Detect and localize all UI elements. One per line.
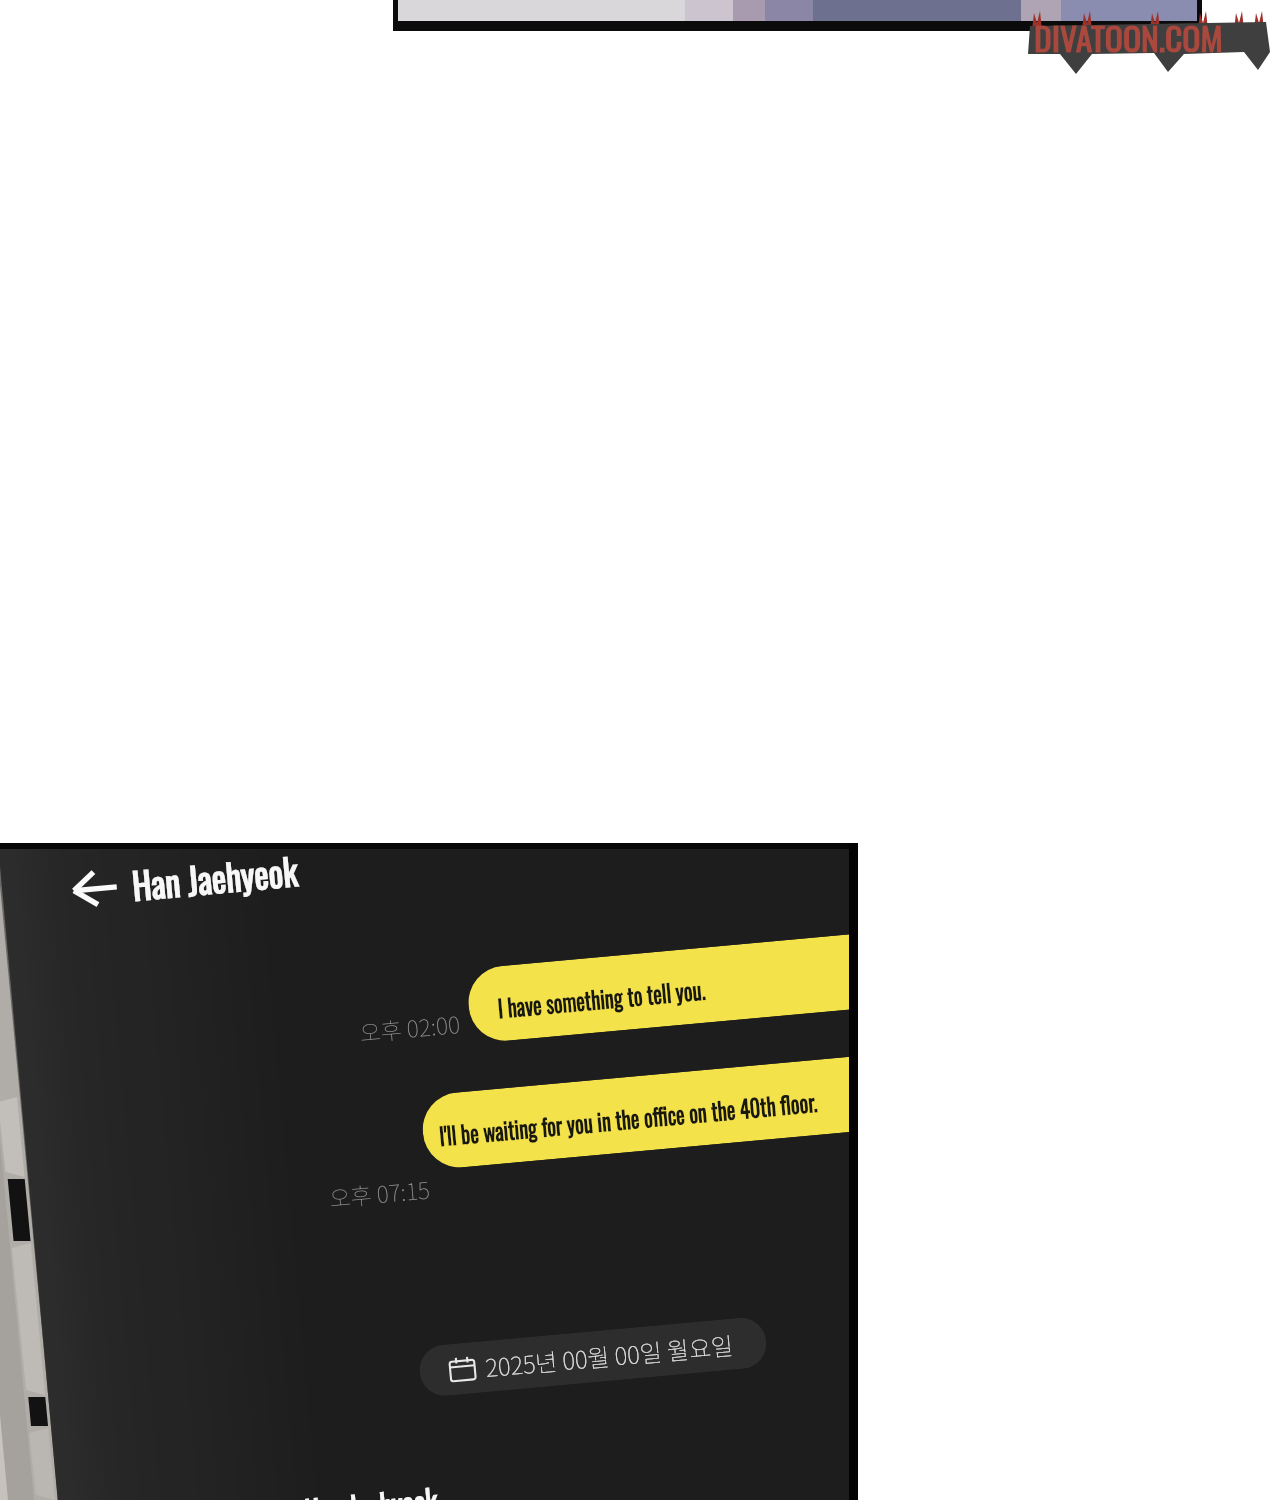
staticText: I have something to tell you. bbox=[496, 971, 707, 1025]
staticText: 2025년 00월 00일 월요일 bbox=[484, 1327, 735, 1384]
staticText: Han Jaehyeok bbox=[130, 843, 300, 911]
button[interactable]: I'll be waiting for you in the office on… bbox=[420, 1052, 858, 1171]
button[interactable]: Han Jaehyeok bbox=[130, 843, 313, 911]
button[interactable]: I have something to tell you. bbox=[465, 931, 858, 1044]
button[interactable]: 2025년 00월 00일 월요일 bbox=[417, 1316, 768, 1398]
staticText: I'll be waiting for you in the office on… bbox=[438, 1083, 819, 1153]
button[interactable]: Back bbox=[62, 853, 129, 920]
staticText: 오후 07:15 bbox=[328, 1171, 431, 1213]
staticText: DIVATOON.COM bbox=[1034, 13, 1223, 62]
staticText: 오후 02:00 bbox=[358, 1006, 462, 1048]
staticText: Han Jaehyeok bbox=[302, 1474, 439, 1500]
